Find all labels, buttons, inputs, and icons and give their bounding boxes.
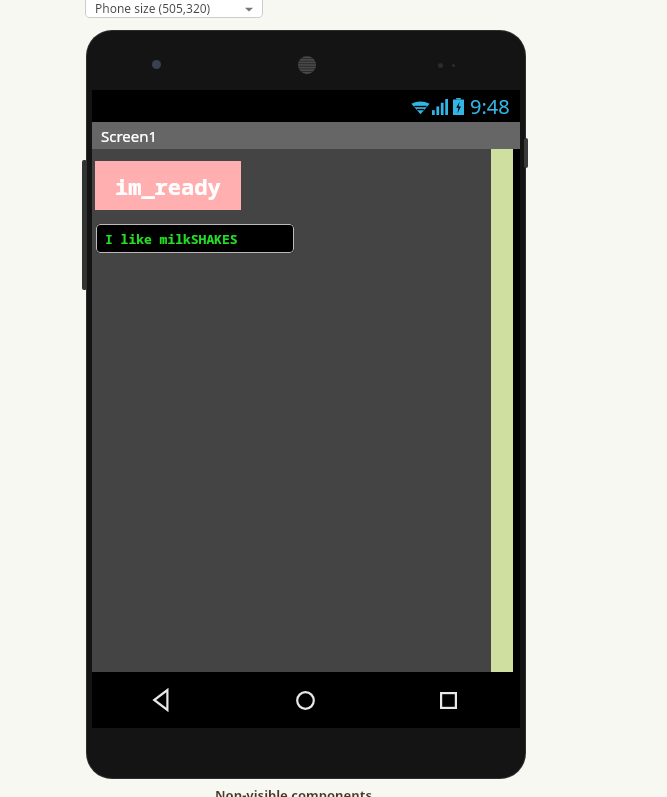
button[interactable]: Recent apps [376,672,520,728]
staticText: I like milkSHAKES [105,230,238,248]
button[interactable]: I like milkSHAKES [96,224,294,253]
staticText: im_ready [115,171,221,201]
staticText: Non-visible components [215,786,372,797]
button[interactable]: Back [92,672,234,728]
button[interactable]: Home [234,672,376,728]
staticText: Phone size (505,320) [95,0,211,16]
staticText: 9:48 [470,93,510,120]
button[interactable]: im_ready [95,161,241,210]
staticText: Screen1 [101,126,158,146]
button[interactable]: Phone size (505,320) [85,0,263,18]
